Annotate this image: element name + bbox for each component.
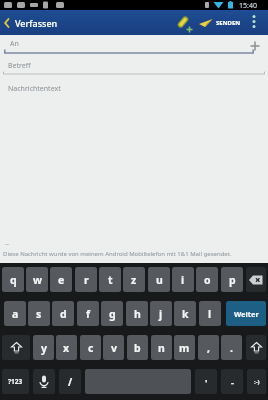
staticText: :-): [254, 378, 260, 386]
button[interactable]: n: [151, 335, 172, 360]
staticText: z: [131, 273, 137, 287]
staticText: w: [33, 273, 42, 287]
button[interactable]: d: [52, 301, 74, 326]
button[interactable]: x: [56, 335, 77, 360]
staticText: j: [159, 307, 163, 321]
button[interactable]: Weiter: [226, 301, 266, 326]
staticText: ,: [207, 341, 210, 355]
button[interactable]: ?123: [2, 369, 29, 394]
staticText: a: [12, 307, 19, 321]
staticText: /: [68, 375, 73, 389]
button[interactable]: [173, 11, 195, 35]
staticText: --: [5, 240, 9, 248]
staticText: Weiter: [234, 309, 259, 319]
button[interactable]: ': [195, 369, 217, 394]
staticText: l: [208, 307, 212, 321]
button[interactable]: g: [101, 301, 123, 326]
button[interactable]: ,: [198, 335, 219, 360]
staticText: h: [134, 307, 141, 321]
staticText: SENDEN: [216, 19, 241, 27]
button[interactable]: a: [4, 301, 26, 326]
staticText: p: [229, 273, 236, 287]
button[interactable]: [244, 35, 266, 54]
staticText: d: [60, 307, 67, 321]
button[interactable]: .: [221, 335, 242, 360]
button[interactable]: p: [221, 267, 243, 292]
button[interactable]: [246, 335, 266, 360]
staticText: g: [109, 307, 116, 321]
button[interactable]: v: [103, 335, 124, 360]
staticText: Diese Nachricht wurde von meinem Android…: [3, 250, 232, 258]
button[interactable]: t: [99, 267, 121, 292]
staticText: -: [231, 376, 234, 388]
button[interactable]: k: [174, 301, 196, 326]
staticText: y: [41, 341, 47, 355]
button[interactable]: s: [28, 301, 50, 326]
staticText: m: [179, 341, 190, 355]
staticText: .: [230, 341, 233, 355]
button[interactable]: [0, 55, 268, 77]
button[interactable]: i: [172, 267, 194, 292]
button[interactable]: j: [150, 301, 172, 326]
button[interactable]: z: [123, 267, 145, 292]
button[interactable]: -: [221, 369, 243, 394]
button[interactable]: :-): [247, 369, 266, 394]
button[interactable]: [2, 335, 30, 360]
button[interactable]: [0, 77, 268, 257]
staticText: Betreff: [8, 61, 31, 71]
button[interactable]: c: [80, 335, 101, 360]
button[interactable]: [246, 10, 264, 35]
button[interactable]: w: [26, 267, 48, 292]
button[interactable]: o: [196, 267, 218, 292]
staticText: b: [134, 341, 141, 355]
staticText: k: [182, 307, 189, 321]
staticText: c: [88, 341, 94, 355]
staticText: x: [63, 341, 70, 355]
staticText: o: [204, 273, 211, 287]
staticText: Nachrichtentext: [8, 84, 61, 94]
staticText: ?123: [8, 377, 23, 386]
button[interactable]: u: [148, 267, 170, 292]
staticText: v: [111, 341, 117, 355]
staticText: r: [84, 273, 89, 287]
button[interactable]: y: [33, 335, 54, 360]
button[interactable]: [246, 267, 266, 292]
button[interactable]: f: [77, 301, 99, 326]
button[interactable]: [0, 35, 268, 54]
button[interactable]: r: [75, 267, 97, 292]
button[interactable]: m: [174, 335, 195, 360]
staticText: u: [156, 273, 163, 287]
staticText: Verfassen: [15, 17, 58, 29]
button[interactable]: l: [199, 301, 221, 326]
staticText: ': [205, 376, 208, 388]
staticText: An: [10, 39, 19, 49]
staticText: q: [10, 273, 17, 287]
staticText: i: [181, 273, 185, 287]
button[interactable]: q: [2, 267, 24, 292]
staticText: f: [86, 307, 91, 321]
button[interactable]: b: [127, 335, 148, 360]
staticText: 15:40: [239, 1, 257, 11]
staticText: n: [158, 341, 165, 355]
button[interactable]: SENDEN: [199, 10, 241, 35]
staticText: t: [108, 273, 113, 287]
staticText: e: [58, 273, 65, 287]
button[interactable]: Verfassen: [0, 17, 58, 29]
button[interactable]: e: [50, 267, 72, 292]
button[interactable]: [33, 369, 55, 394]
button[interactable]: h: [126, 301, 148, 326]
staticText: s: [36, 307, 42, 321]
button[interactable]: /: [59, 369, 81, 394]
